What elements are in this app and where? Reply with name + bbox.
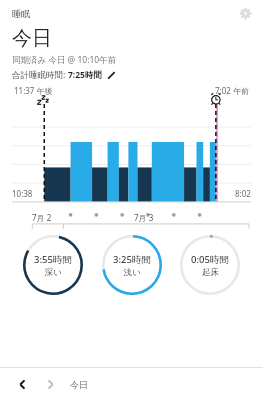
button[interactable]: Edit [106,70,117,81]
staticText: 0:05時間 [191,253,229,266]
button[interactable]: 今日 [70,379,88,390]
staticText: 浅い [123,267,141,278]
button[interactable]: 3:25時間 [98,231,166,299]
staticText: 同期済み 今日 @ 10:10午前 [12,54,117,66]
button[interactable]: Settings [236,4,254,22]
staticText: 7:02 午前 [215,85,249,96]
button[interactable]: Next [40,374,60,394]
staticText: 今日 [12,26,52,51]
button[interactable]: 3:55時間 [19,231,87,299]
staticText: 起床 [202,267,219,278]
staticText: 3:55時間 [34,253,72,266]
staticText: 3:25時間 [113,253,151,266]
button[interactable]: 0:05時間 [176,231,244,299]
staticText: 7月 2 [32,212,52,223]
staticText: 11:37 午後 [14,85,53,96]
staticText: 深い [44,267,62,278]
button[interactable]: Previous [12,374,32,394]
staticText: 8:02 [235,188,251,199]
staticText: 7:25時間 [68,69,102,81]
staticText: 10:38 [12,188,33,199]
staticText: 7月 3 [134,212,154,223]
staticText: 今日 [70,379,88,390]
staticText: 合計睡眠時間: [12,69,68,81]
staticText: 睡眠 [12,8,30,19]
